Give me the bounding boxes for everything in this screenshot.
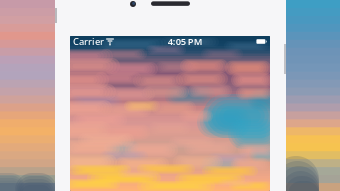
- staticText: 4:05 PM: [168, 35, 203, 48]
- staticText: Carrier: [73, 35, 104, 48]
